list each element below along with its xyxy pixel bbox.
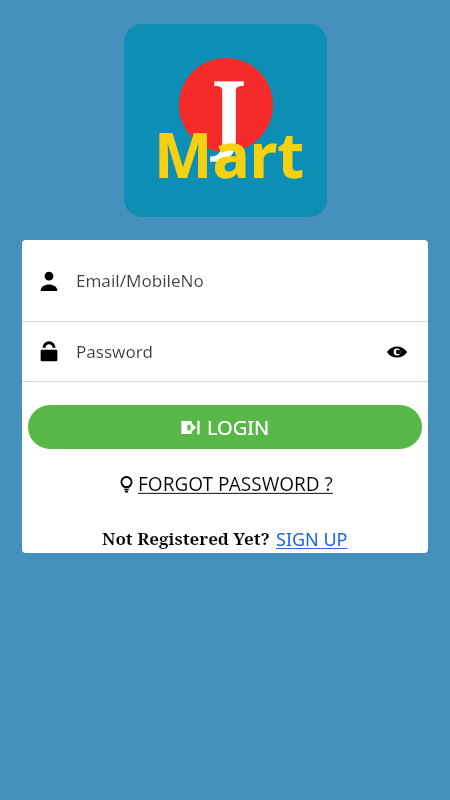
staticText: SIGN UP	[276, 527, 348, 549]
staticText: Password	[76, 340, 153, 363]
button[interactable]: LOGIN	[28, 405, 422, 449]
staticText: Email/MobileNo	[76, 269, 204, 292]
staticText: FORGOT PASSWORD ?	[138, 471, 333, 497]
button[interactable]: Password	[22, 322, 428, 381]
staticText: Mart	[154, 112, 305, 196]
staticText: J	[212, 52, 246, 166]
button[interactable]: Email/MobileNo	[22, 240, 428, 321]
button[interactable]: Show password	[382, 337, 412, 367]
button[interactable]: Not Registered Yet?	[94, 523, 356, 553]
staticText: Not Registered Yet?	[102, 527, 270, 549]
staticText: LOGIN	[207, 414, 270, 441]
button[interactable]: FORGOT PASSWORD ?	[110, 467, 341, 501]
